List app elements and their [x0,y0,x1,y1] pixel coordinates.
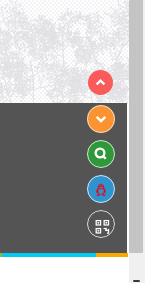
button[interactable]: QQ [87,175,115,203]
button[interactable]: Scroll to bottom [87,105,115,133]
button[interactable]: Scroll to top [88,70,113,95]
button[interactable]: Scan QR code [87,210,115,238]
button[interactable]: Search [87,140,115,168]
